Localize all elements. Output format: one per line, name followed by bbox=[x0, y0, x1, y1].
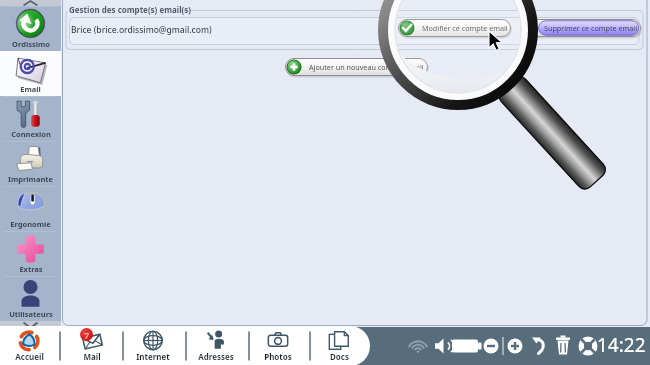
button[interactable]: Ergonomie bbox=[0, 186, 61, 231]
button[interactable]: Utilisateurs bbox=[0, 276, 61, 321]
staticText: Ergonomie bbox=[10, 219, 51, 229]
staticText: Modifier ce compte email bbox=[422, 23, 508, 33]
staticText: Adresses bbox=[198, 351, 234, 362]
staticText: Ordissimo bbox=[12, 39, 50, 49]
button[interactable]: Scroll up bbox=[0, 0, 61, 6]
staticText: Gestion des compte(s) email(s) bbox=[69, 4, 191, 15]
staticText: Supprimer ce compte email bbox=[544, 23, 638, 33]
button[interactable]: Imprimante bbox=[0, 141, 61, 186]
button[interactable]: Scroll down bbox=[0, 321, 61, 330]
button[interactable]: Supprimer ce compte email bbox=[520, 19, 641, 37]
staticText: Internet bbox=[136, 351, 170, 362]
staticText: Ajouter un nouveau compte email bbox=[309, 62, 424, 72]
button[interactable]: Photos bbox=[248, 327, 308, 365]
button[interactable]: Mail bbox=[62, 327, 122, 365]
staticText: Accueil bbox=[15, 351, 44, 362]
staticText: Imprimante bbox=[8, 174, 53, 184]
staticText: 7 bbox=[84, 329, 90, 341]
staticText: 14:22 bbox=[597, 332, 646, 358]
staticText: Photos bbox=[264, 351, 292, 362]
staticText: Mail bbox=[83, 351, 101, 362]
staticText: Extras bbox=[19, 264, 43, 274]
button[interactable]: Ajouter un nouveau compte email bbox=[285, 58, 428, 76]
button[interactable]: Extras bbox=[0, 231, 61, 276]
button[interactable]: Email bbox=[0, 51, 61, 96]
button[interactable]: Internet bbox=[123, 327, 183, 365]
staticText: Utilisateurs bbox=[9, 309, 53, 319]
staticText: Connexion bbox=[11, 129, 51, 139]
staticText: Brice (brice.ordissimo@gmail.com) bbox=[71, 24, 212, 36]
staticText: Email bbox=[20, 84, 41, 94]
button[interactable]: Modifier ce compte email bbox=[398, 19, 511, 37]
button[interactable]: Accueil bbox=[0, 327, 59, 365]
button[interactable]: Ordissimo bbox=[0, 6, 61, 51]
button[interactable]: Docs bbox=[309, 327, 369, 365]
staticText: Docs bbox=[330, 351, 349, 362]
button[interactable]: Connexion bbox=[0, 96, 61, 141]
button[interactable]: Adresses bbox=[186, 327, 246, 365]
